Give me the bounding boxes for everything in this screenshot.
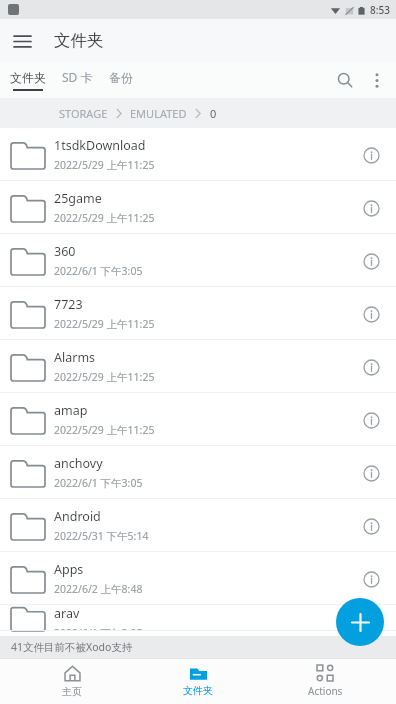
button[interactable]: 备份 [109, 70, 133, 91]
button[interactable]: SD 卡 [62, 69, 93, 91]
button[interactable]: 文件夹 [10, 70, 46, 91]
button[interactable]: 1tsdkDownload [0, 128, 396, 181]
staticText: 25game [54, 190, 102, 207]
staticText: 2022/6/2 上午8:48 [54, 582, 143, 596]
button[interactable]: File info [354, 605, 388, 631]
staticText: 主页 [62, 685, 82, 698]
staticText: 文件夹 [10, 70, 46, 85]
staticText: 2022/6/1 下午3:05 [54, 476, 143, 490]
button[interactable]: File info [354, 138, 388, 172]
button[interactable]: File info [354, 297, 388, 331]
button[interactable]: Open navigation drawer [6, 25, 38, 57]
button[interactable]: 文件夹 [143, 659, 253, 704]
staticText: 7723 [54, 296, 83, 313]
button[interactable]: 主页 [17, 659, 127, 704]
button[interactable]: 0 [210, 106, 217, 121]
staticText: 8:53 [370, 3, 390, 17]
staticText: Android [54, 508, 101, 525]
button[interactable]: File info [354, 562, 388, 596]
staticText: arav [54, 605, 80, 622]
staticText: Alarms [54, 349, 96, 366]
button[interactable]: File info [354, 350, 388, 384]
button[interactable]: 7723 [0, 287, 396, 340]
staticText: 文件夹 [183, 684, 213, 697]
button[interactable]: More options [362, 65, 392, 95]
button[interactable]: Actions [270, 659, 380, 704]
button[interactable]: anchovy [0, 446, 396, 499]
staticText: Apps [54, 561, 84, 578]
staticText: amap [54, 402, 88, 419]
staticText: 2022/5/29 上午11:25 [54, 211, 155, 225]
button[interactable]: Add [336, 598, 384, 646]
button[interactable]: 360 [0, 234, 396, 287]
button[interactable]: Alarms [0, 340, 396, 393]
staticText: 2022/5/29 上午11:25 [54, 370, 155, 384]
staticText: 360 [54, 243, 76, 260]
staticText: 1tsdkDownload [54, 137, 146, 154]
staticText: 2022/5/29 上午11:25 [54, 158, 155, 172]
button[interactable]: STORAGE [59, 106, 108, 121]
button[interactable]: Android [0, 499, 396, 552]
staticText: 2022/6/1 下午3:05 [54, 264, 143, 278]
staticText: Actions [308, 684, 343, 698]
button[interactable]: File info [354, 244, 388, 278]
button[interactable]: arav [0, 605, 396, 631]
button[interactable]: amap [0, 393, 396, 446]
staticText: 2022/5/29 上午11:25 [54, 423, 155, 437]
button[interactable]: Apps [0, 552, 396, 605]
staticText: 2022/5/31 下午5:14 [54, 529, 149, 543]
button[interactable]: 25game [0, 181, 396, 234]
button[interactable]: File info [354, 403, 388, 437]
button[interactable]: EMULATED [130, 106, 187, 121]
button[interactable]: File info [354, 191, 388, 225]
staticText: 2022/6/1 下午3:05 [54, 626, 143, 631]
button[interactable]: File info [354, 509, 388, 543]
staticText: 2022/5/29 上午11:25 [54, 317, 155, 331]
button[interactable]: Search [328, 63, 362, 97]
button[interactable]: File info [354, 456, 388, 490]
staticText: 备份 [109, 70, 133, 85]
staticText: SD 卡 [62, 69, 93, 85]
staticText: 41文件目前不被Xodo支持 [11, 640, 133, 654]
staticText: anchovy [54, 455, 103, 472]
staticText: 文件夹 [54, 30, 104, 51]
